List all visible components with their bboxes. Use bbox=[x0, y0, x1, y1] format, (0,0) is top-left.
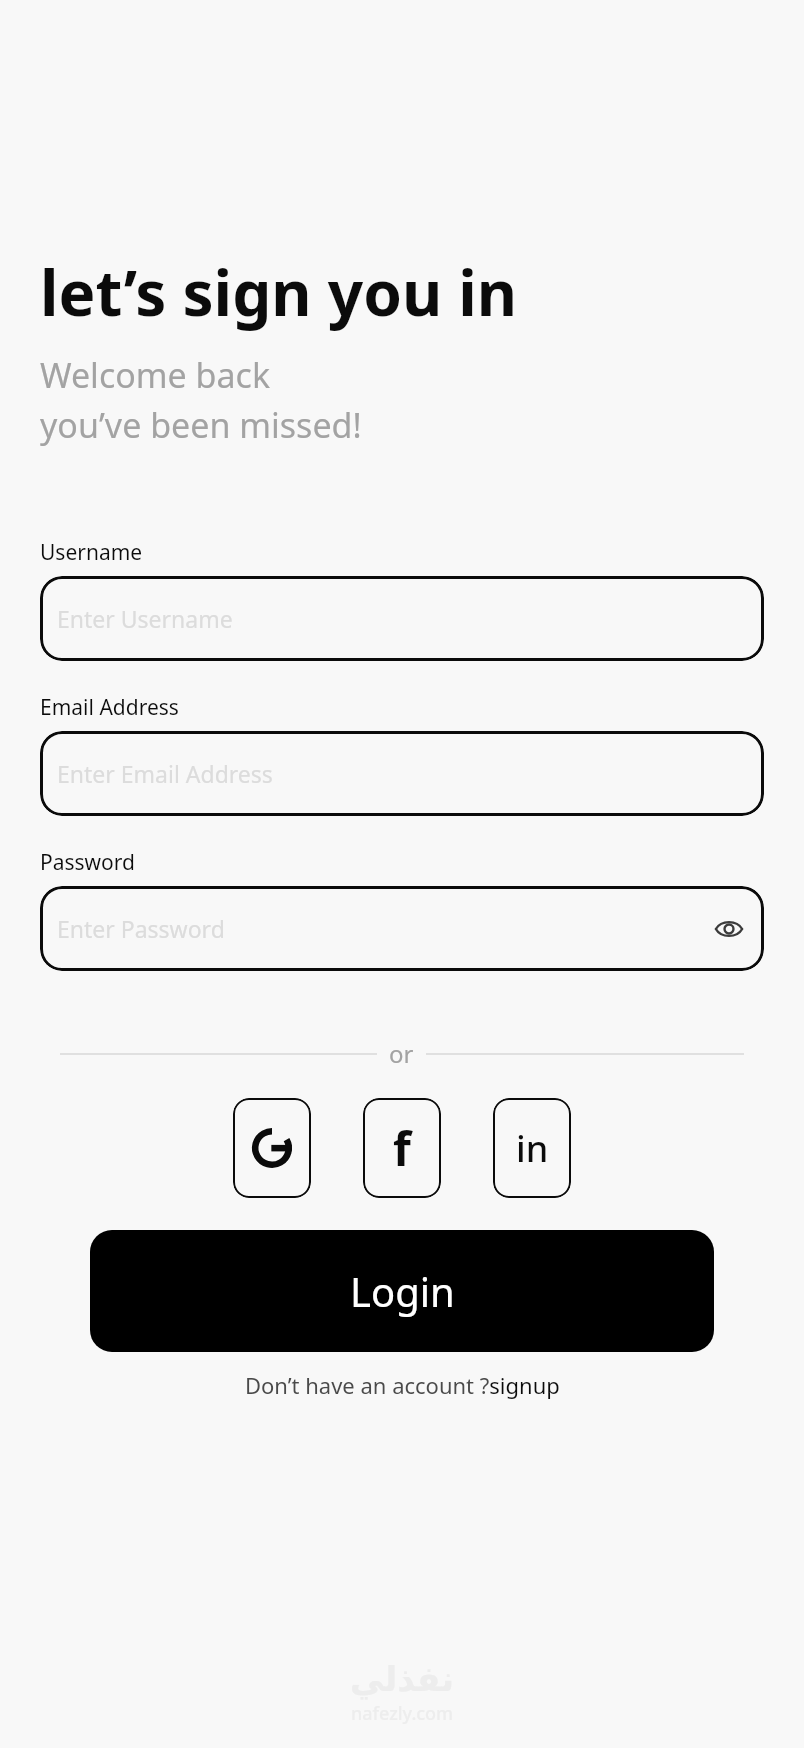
staticText: nafezly.com bbox=[351, 1701, 454, 1726]
staticText: Welcome back bbox=[40, 352, 271, 398]
staticText: f bbox=[393, 1117, 411, 1180]
button[interactable]: Sign in with LinkedIn bbox=[493, 1098, 571, 1198]
staticText: you’ve been missed! bbox=[40, 402, 362, 448]
staticText: Email Address bbox=[40, 693, 179, 722]
staticText: Enter Password bbox=[57, 913, 706, 944]
button[interactable]: Enter Password bbox=[40, 886, 764, 971]
staticText: Username bbox=[40, 538, 143, 567]
staticText: Login bbox=[350, 1264, 455, 1318]
staticText: نفذلي bbox=[350, 1659, 455, 1699]
button[interactable]: Sign in with Google bbox=[233, 1098, 311, 1198]
staticText: or bbox=[389, 1037, 414, 1070]
button[interactable]: Enter Username bbox=[40, 576, 764, 661]
button[interactable]: Show password bbox=[706, 906, 752, 952]
staticText: in bbox=[516, 1124, 549, 1173]
button[interactable]: Enter Email Address bbox=[40, 731, 764, 816]
staticText: let’s sign you in bbox=[40, 250, 518, 334]
staticText: Password bbox=[40, 848, 135, 877]
button[interactable]: Don’t have an account ?signup bbox=[40, 1370, 764, 1400]
staticText: Enter Username bbox=[57, 603, 752, 634]
button[interactable]: Login bbox=[90, 1230, 714, 1352]
staticText: Don’t have an account ?signup bbox=[245, 1370, 560, 1400]
staticText: Enter Email Address bbox=[57, 758, 752, 789]
button[interactable]: Sign in with Facebook bbox=[363, 1098, 441, 1198]
